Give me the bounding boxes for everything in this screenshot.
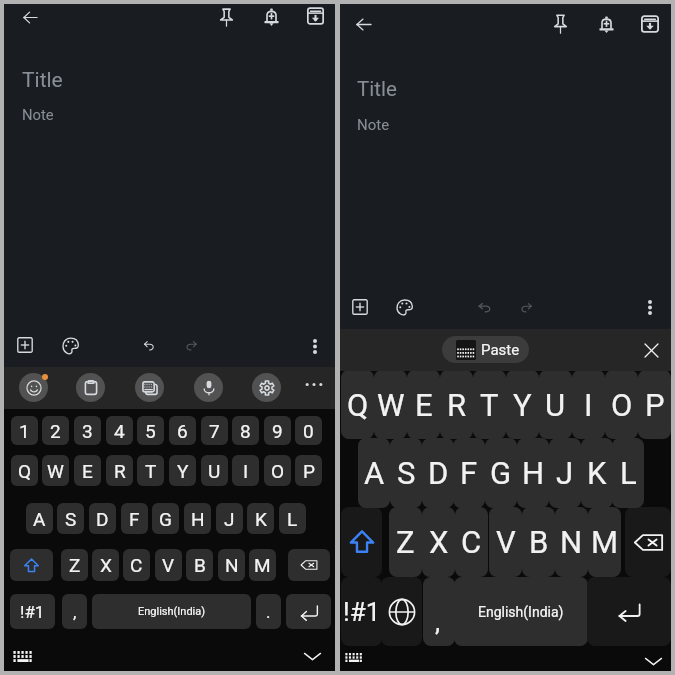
button[interactable]: B (522, 507, 555, 577)
button[interactable]: G (152, 503, 179, 534)
button[interactable]: 9 (264, 416, 291, 445)
button[interactable]: More (305, 381, 323, 387)
button[interactable]: Reminder (257, 3, 285, 31)
button[interactable]: T (137, 455, 164, 486)
button[interactable]: D (422, 438, 454, 508)
button[interactable]: N (218, 549, 245, 581)
button[interactable]: 1 (11, 416, 38, 445)
button[interactable]: Back (350, 10, 378, 38)
button[interactable]: B (186, 549, 213, 581)
button[interactable]: X (422, 507, 455, 577)
button[interactable]: 0 (295, 416, 322, 445)
button[interactable]: L (612, 438, 644, 508)
button[interactable]: J (549, 438, 581, 508)
button[interactable]: Clipboard (76, 373, 105, 402)
button[interactable]: C (123, 549, 150, 581)
button[interactable]: K (581, 438, 613, 508)
button[interactable]: 6 (169, 416, 196, 445)
button[interactable]: Q (11, 455, 38, 486)
button[interactable]: T (473, 371, 506, 439)
button[interactable]: Pin (546, 10, 574, 38)
button[interactable]: O (264, 455, 291, 486)
button[interactable]: English(India) (92, 594, 251, 629)
button[interactable]: Emoji (19, 373, 48, 402)
button[interactable]: Y (169, 455, 196, 486)
button[interactable]: Hide keyboard (301, 649, 323, 663)
button[interactable]: S (390, 438, 422, 508)
button[interactable]: 4 (106, 416, 133, 445)
button[interactable]: U (539, 371, 572, 439)
button[interactable]: E (74, 455, 101, 486)
button[interactable]: Undo (470, 293, 498, 321)
button[interactable]: J (216, 503, 243, 534)
button[interactable]: R (106, 455, 133, 486)
button[interactable]: Q (341, 371, 374, 439)
button[interactable]: Y (506, 371, 539, 439)
button[interactable]: W (42, 455, 69, 486)
button[interactable]: More options (636, 293, 664, 321)
button[interactable]: Backspace (288, 549, 330, 581)
button[interactable]: Enter (587, 577, 671, 646)
button[interactable]: U (201, 455, 228, 486)
button[interactable]: Back (16, 3, 44, 31)
button[interactable]: Reminder (592, 11, 620, 39)
button[interactable]: E (407, 371, 440, 439)
button[interactable]: N (555, 507, 588, 577)
button[interactable]: 7 (201, 416, 228, 445)
button[interactable]: 3 (74, 416, 101, 445)
button[interactable]: Close (640, 339, 662, 361)
button[interactable]: Keyboard layout (12, 649, 34, 663)
button[interactable]: Colour (56, 332, 84, 360)
button[interactable]: M (588, 507, 621, 577)
button[interactable]: , (423, 577, 455, 646)
button[interactable]: I (232, 455, 259, 486)
button[interactable]: !#1 (341, 577, 382, 646)
button[interactable]: H (517, 438, 549, 508)
button[interactable]: Z (389, 507, 422, 577)
button[interactable]: Enter (286, 594, 331, 629)
button[interactable]: A (358, 438, 390, 508)
button[interactable]: Archive (301, 2, 329, 30)
button[interactable]: . (256, 594, 281, 629)
button[interactable]: L (279, 503, 306, 534)
button[interactable]: Undo (134, 331, 162, 359)
button[interactable]: , (62, 594, 87, 629)
button[interactable]: W (374, 371, 407, 439)
button[interactable]: Voice input (194, 373, 223, 402)
button[interactable]: A (26, 503, 53, 534)
button[interactable]: D (89, 503, 116, 534)
button[interactable]: English(India) (454, 577, 588, 646)
button[interactable]: F (453, 438, 485, 508)
button[interactable]: V (489, 507, 522, 577)
button[interactable]: I (572, 371, 605, 439)
button[interactable]: O (605, 371, 638, 439)
button[interactable]: Keyboard layout (344, 651, 364, 663)
button[interactable]: Add note item (346, 293, 374, 321)
button[interactable]: H (184, 503, 211, 534)
button[interactable]: Add note item (11, 331, 39, 359)
button[interactable]: Paste (442, 336, 529, 363)
button[interactable]: R (440, 371, 473, 439)
button[interactable]: C (455, 507, 488, 577)
button[interactable]: Redo (513, 293, 541, 321)
button[interactable]: Switch keyboard (135, 373, 164, 402)
button[interactable]: More options (301, 332, 329, 360)
button[interactable]: Language (381, 577, 422, 646)
button[interactable]: Z (61, 549, 88, 581)
button[interactable]: S (57, 503, 84, 534)
button[interactable]: !#1 (10, 594, 55, 629)
button[interactable]: 5 (137, 416, 164, 445)
button[interactable]: Shift (10, 549, 53, 581)
button[interactable]: Settings (252, 373, 281, 402)
button[interactable]: Hide keyboard (642, 654, 664, 668)
button[interactable]: G (485, 438, 517, 508)
button[interactable]: P (295, 455, 322, 486)
button[interactable]: Shift (341, 507, 382, 577)
button[interactable]: M (249, 549, 276, 581)
button[interactable]: Pin (212, 3, 240, 31)
button[interactable]: F (121, 503, 148, 534)
button[interactable]: K (247, 503, 274, 534)
button[interactable]: Backspace (625, 507, 671, 577)
button[interactable]: 8 (232, 416, 259, 445)
button[interactable]: Redo (178, 331, 206, 359)
